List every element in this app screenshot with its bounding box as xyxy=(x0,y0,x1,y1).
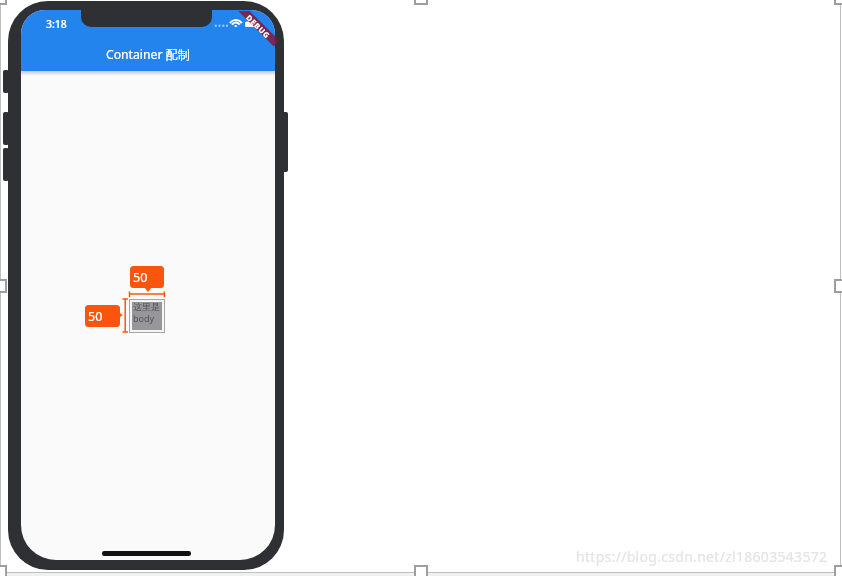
button[interactable]: 50 xyxy=(130,266,164,288)
button[interactable]: 50 xyxy=(85,305,120,327)
staticText: 这里是 xyxy=(133,301,160,312)
button[interactable] xyxy=(21,10,275,71)
staticText: 50 xyxy=(88,308,103,325)
staticText: DEBUG xyxy=(246,13,272,39)
staticText: https://blog.csdn.net/zl18603543572 xyxy=(576,547,828,566)
staticText: 50 xyxy=(133,269,148,286)
staticText: body xyxy=(133,312,155,324)
staticText: Container 配制 xyxy=(106,46,190,63)
staticText: 3:18 xyxy=(46,17,67,31)
button[interactable]: 这里是 xyxy=(132,302,162,330)
